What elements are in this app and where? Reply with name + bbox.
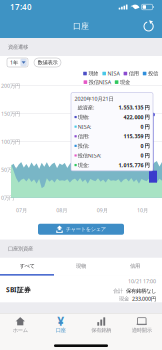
staticText: 0 円 (140, 142, 149, 149)
staticText: 現金 (120, 79, 130, 85)
staticText: 100万円 (1, 138, 20, 145)
staticText: 口座 (56, 327, 66, 333)
button[interactable]: チャートをシェア (38, 224, 124, 235)
staticText: 0万円 (1, 194, 14, 201)
staticText: 保有銘柄なし (126, 288, 156, 294)
staticText: 422,000 円 (123, 113, 149, 121)
staticText: 信用 (130, 263, 140, 269)
staticText: 数値表示 (37, 59, 57, 66)
staticText: 保有銘柄 (91, 327, 111, 333)
staticText: 総資産: (78, 104, 94, 111)
staticText: 現物 (88, 70, 98, 77)
staticText: 10/21 17:00 (128, 278, 156, 285)
staticText: 0 円 (140, 152, 149, 159)
staticText: 50万円 (1, 166, 17, 173)
staticText: 10月 (137, 207, 148, 214)
staticText: 現金 (119, 295, 129, 302)
button[interactable]: 1年 (7, 58, 28, 67)
staticText: 口座 (73, 21, 89, 31)
button[interactable]: 適時開示 (121, 313, 162, 336)
button[interactable]: 保有銘柄 (81, 313, 121, 336)
staticText: 現物 (76, 263, 86, 269)
staticText: 現金: (78, 161, 89, 169)
staticText: 口座別資産 (8, 245, 33, 252)
staticText: SBI証券 (6, 285, 31, 294)
staticText: ¥ (57, 313, 64, 329)
staticText: 投信NISA: (78, 152, 101, 159)
staticText: 投信 (148, 70, 158, 77)
button[interactable]: すべて (0, 258, 54, 276)
staticText: 08月 (56, 207, 67, 214)
staticText: 200万円 (1, 82, 20, 89)
staticText: すべて (19, 263, 34, 269)
staticText: 2020年10月21日 (74, 95, 113, 102)
staticText: 115,359 円 (123, 133, 149, 140)
button[interactable]: ¥ (40, 313, 81, 336)
staticText: チャートをシェア (66, 226, 106, 233)
staticText: 17:40 (10, 2, 32, 12)
staticText: NISA (108, 70, 120, 77)
staticText: 0 円 (140, 123, 149, 130)
staticText: 1,553,135 円 (118, 104, 149, 111)
staticText: 合計 (113, 288, 123, 294)
staticText: 1,015,776 円 (118, 161, 149, 169)
staticText: 233,000円 (132, 295, 156, 302)
staticText: 150万円 (1, 110, 20, 117)
staticText: 信用 (129, 70, 139, 77)
staticText: 09月 (97, 207, 108, 214)
staticText: 信用: (78, 133, 89, 140)
button[interactable]: 数値表示 (34, 58, 61, 67)
button[interactable]: 現物 (54, 258, 108, 276)
staticText: 現物: (78, 113, 89, 121)
button[interactable]: ホーム (0, 313, 40, 336)
staticText: 1年 (10, 59, 18, 66)
staticText: 資産遷移 (8, 44, 28, 50)
button[interactable]: 更新 (138, 15, 160, 37)
staticText: 投信: (78, 142, 89, 149)
staticText: ホーム (13, 327, 28, 333)
staticText: 適時開示 (132, 327, 152, 333)
staticText: NISA: (78, 123, 91, 130)
button[interactable]: 信用 (108, 258, 162, 276)
staticText: 07月 (16, 207, 27, 214)
staticText: 投信NISA (89, 79, 111, 86)
